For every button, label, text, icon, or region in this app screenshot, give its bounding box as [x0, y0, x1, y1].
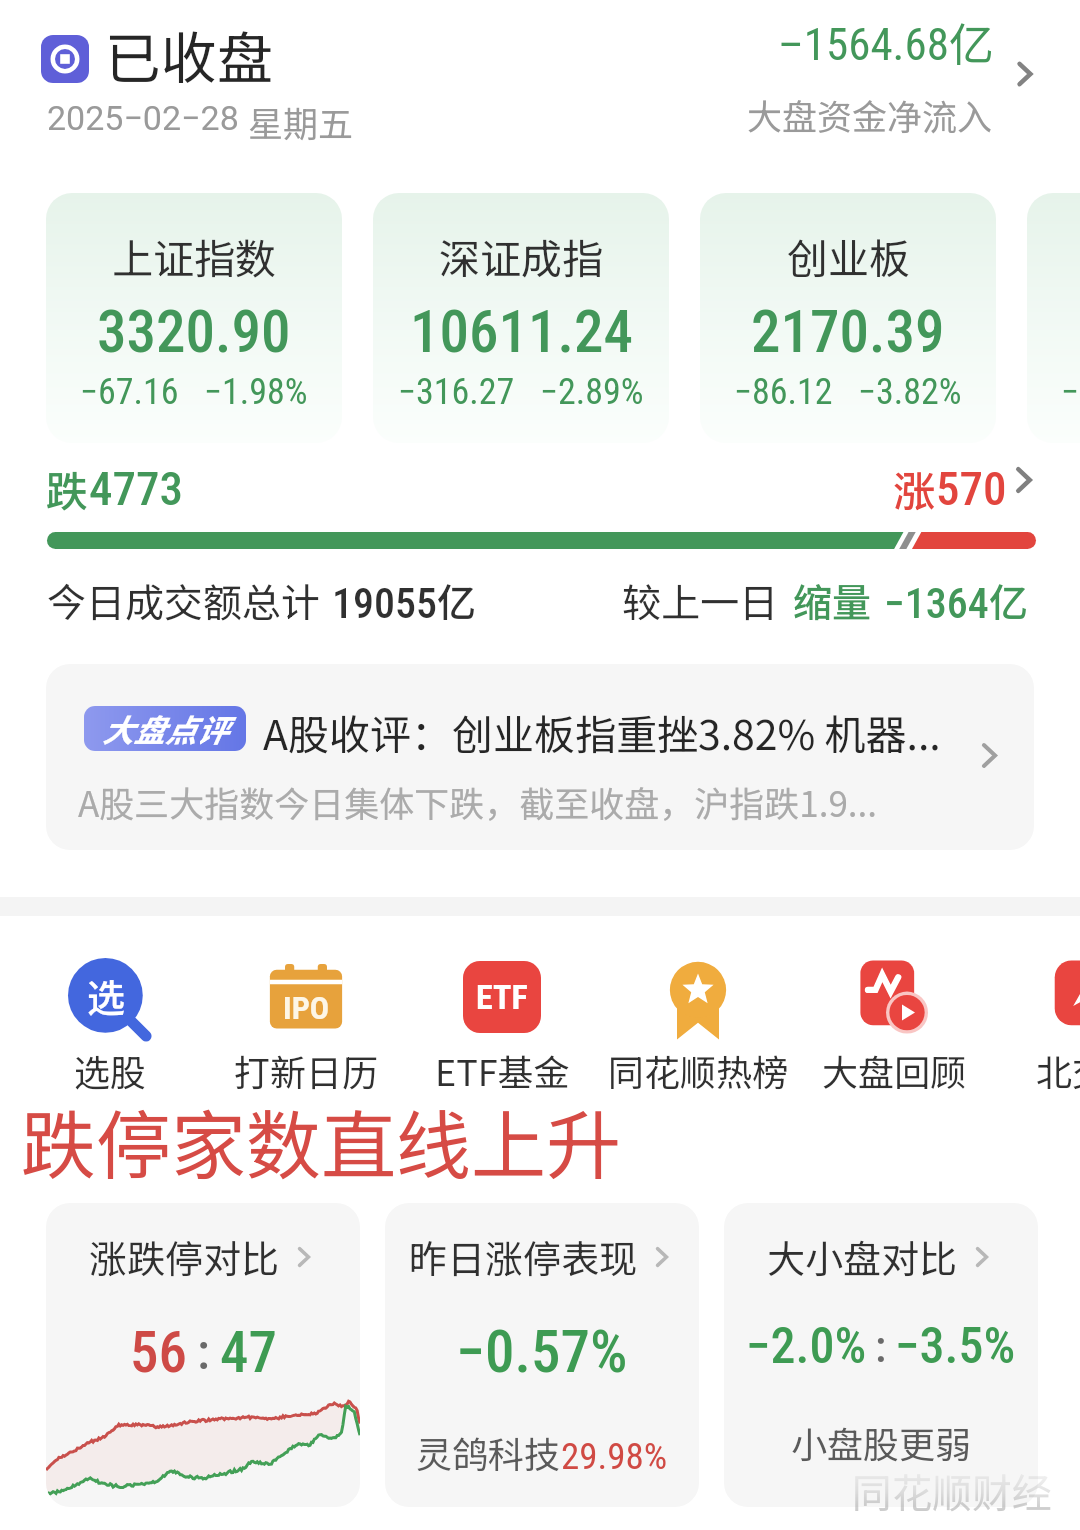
- staticText: 56: [130, 1319, 187, 1386]
- staticText: :: [197, 1323, 210, 1382]
- button[interactable]: 大小盘对比: [724, 1203, 1038, 1507]
- staticText: 昨日涨停表现: [409, 1229, 638, 1284]
- staticText: −67.16: [80, 371, 179, 413]
- staticText: 较上一日: [622, 572, 779, 628]
- staticText: 大小盘对比: [767, 1229, 958, 1284]
- other: 涨跌家数详情: [1006, 462, 1042, 498]
- staticText: 灵鸽科技: [416, 1426, 561, 1478]
- staticText: 19055: [332, 579, 437, 628]
- staticText: 北交所: [1036, 1044, 1080, 1096]
- staticText: 跌: [46, 458, 89, 516]
- staticText: −2.0%: [746, 1317, 867, 1376]
- other: 查看点评: [972, 738, 1007, 773]
- staticText: 上证指数: [112, 226, 276, 285]
- staticText: 缩量: [793, 572, 872, 628]
- button[interactable]: 北交所: [992, 958, 1080, 1096]
- button[interactable]: 大盘回顾: [796, 958, 992, 1096]
- button[interactable]: IPO: [208, 958, 404, 1096]
- staticText: −1.98%: [204, 371, 308, 413]
- staticText: −1364: [884, 579, 989, 628]
- staticText: −0.57%: [456, 1317, 628, 1386]
- staticText: 29.98%: [561, 1435, 668, 1478]
- button[interactable]: 深证成指: [373, 193, 669, 443]
- staticText: 47: [220, 1319, 277, 1386]
- staticText: –1564.68: [778, 18, 949, 71]
- staticText: −3.82%: [858, 371, 962, 413]
- button[interactable]: 同花顺热榜: [600, 958, 796, 1096]
- button[interactable]: 已收盘: [0, 0, 1080, 165]
- staticText: A股三大指数今日集体下跌，截至收盘，沪指跌1.9...: [78, 776, 958, 827]
- staticText: 亿: [437, 572, 477, 628]
- staticText: 打新日历: [234, 1044, 379, 1096]
- staticText: −3.5%: [895, 1317, 1016, 1376]
- button[interactable]: 跌: [0, 454, 1080, 512]
- staticText: 大盘点评: [102, 706, 228, 751]
- staticText: A股收评：创业板指重挫3.82% 机器...: [263, 702, 1003, 761]
- staticText: 大盘回顾: [822, 1044, 967, 1096]
- staticText: ETF基金: [435, 1044, 570, 1096]
- staticText: 今日成交额总计: [47, 572, 321, 628]
- staticText: −10.22: [1061, 371, 1080, 413]
- staticText: 跌停家数直线上升: [21, 1086, 622, 1195]
- button[interactable]: 涨跌停对比: [46, 1203, 360, 1507]
- staticText: 涨跌停对比: [89, 1229, 280, 1284]
- staticText: 选: [87, 968, 126, 1023]
- button[interactable]: 上证指数: [46, 193, 342, 443]
- button[interactable]: 大盘点评: [46, 664, 1034, 850]
- staticText: 2170.39: [751, 297, 945, 366]
- staticText: 选股: [74, 1044, 147, 1096]
- button[interactable]: 创业板: [700, 193, 996, 443]
- staticText: 同花顺热榜: [608, 1044, 789, 1096]
- staticText: 570: [936, 461, 1007, 516]
- staticText: 大盘资金净流入: [747, 89, 993, 140]
- button[interactable]: 选: [12, 958, 208, 1096]
- staticText: 3320.90: [97, 297, 291, 366]
- staticText: 涨: [893, 458, 936, 516]
- staticText: 同花顺财经: [852, 1462, 1052, 1516]
- other: 大盘资金净流入详情: [1008, 57, 1042, 91]
- staticText: 亿: [949, 9, 995, 74]
- staticText: 创业板: [787, 226, 910, 285]
- button[interactable]: ETF: [404, 958, 600, 1096]
- staticText: 小盘股更弱: [791, 1416, 972, 1468]
- staticText: 已收盘: [105, 14, 273, 95]
- staticText: 深证成指: [439, 226, 603, 285]
- staticText: −316.27: [398, 371, 515, 413]
- button[interactable]: 北证50成: [1027, 193, 1080, 443]
- staticText: IPO: [283, 989, 330, 1027]
- staticText: −2.89%: [540, 371, 644, 413]
- staticText: 10611.24: [410, 297, 633, 366]
- staticText: 2025−02−28: [47, 98, 239, 138]
- staticText: 星期五: [248, 96, 354, 147]
- staticText: −86.12: [734, 371, 833, 413]
- staticText: ETF: [476, 977, 528, 1017]
- button[interactable]: 昨日涨停表现: [385, 1203, 699, 1507]
- staticText: 亿: [989, 572, 1029, 628]
- staticText: 4773: [89, 461, 183, 516]
- staticText: :: [875, 1321, 887, 1373]
